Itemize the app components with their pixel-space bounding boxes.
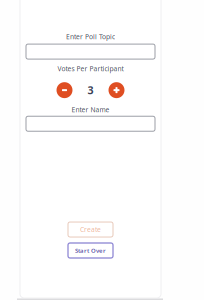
button[interactable]: Increase votes per participant [108, 82, 124, 98]
button[interactable]: Decrease votes per participant [56, 82, 72, 98]
staticText: Enter Name [71, 105, 109, 114]
button[interactable]: Create [68, 222, 113, 237]
button[interactable]: Start Over [68, 243, 113, 258]
staticText: Create [80, 225, 101, 234]
staticText: Enter Poll Topic [66, 32, 115, 41]
staticText: Start Over [75, 246, 106, 255]
staticText: 3 [87, 83, 93, 97]
staticText: Votes Per Participant [57, 64, 123, 73]
